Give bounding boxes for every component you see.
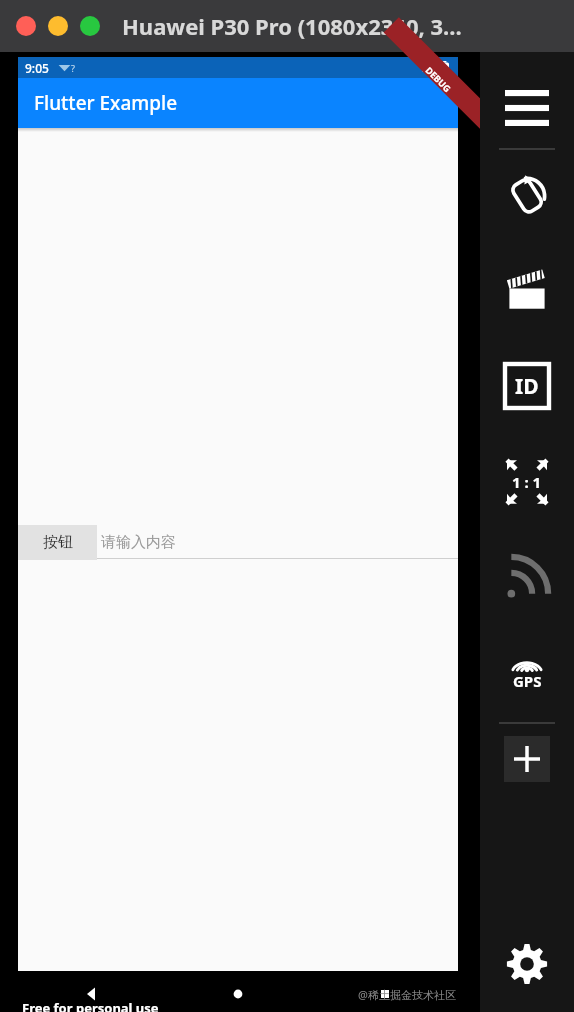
button[interactable]: GPS location [499, 644, 555, 700]
button[interactable]: Actual size 1 to 1 [499, 454, 555, 510]
button[interactable]: Home [164, 971, 311, 1012]
staticText: 1 : 1 [512, 472, 542, 492]
button[interactable]: Record screen [499, 264, 555, 320]
button[interactable]: Zoom [80, 16, 100, 36]
staticText: Huawei P30 Pro (1080x2340, 3… [122, 11, 462, 41]
button[interactable]: Minimise [48, 16, 68, 36]
button[interactable]: Rotate [499, 168, 555, 224]
staticText: DEBUG [423, 64, 454, 94]
button[interactable]: 请输入内容 [97, 526, 458, 559]
button[interactable]: 按钮 [18, 525, 97, 560]
staticText: ID [515, 372, 539, 401]
staticText: ? [71, 62, 75, 74]
button[interactable]: Back [18, 971, 164, 1012]
staticText: Flutter Example [34, 90, 178, 116]
button[interactable]: Close [16, 16, 36, 36]
staticText: 按钮 [43, 533, 73, 552]
staticText: @稀土掘金技术社区 [358, 987, 456, 1002]
staticText: GPS [513, 671, 542, 691]
button[interactable]: Add [504, 736, 550, 782]
staticText: Free for personal use [22, 999, 159, 1012]
staticText: 9:05 [25, 60, 49, 76]
button[interactable]: Device ID [499, 358, 555, 414]
button[interactable]: Menu [499, 80, 555, 136]
staticText: 请输入内容 [101, 533, 176, 552]
button[interactable]: Settings [499, 936, 555, 992]
button[interactable]: Recents [311, 971, 458, 1012]
button[interactable]: Network [499, 550, 555, 606]
